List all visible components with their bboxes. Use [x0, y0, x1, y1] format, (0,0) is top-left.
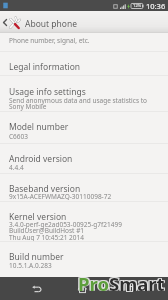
staticText: 12%	[133, 3, 142, 9]
staticText: Kernel version	[9, 211, 67, 223]
staticText: About phone	[25, 18, 78, 30]
button[interactable]: Navigate up	[0, 11, 21, 33]
staticText: ProSmart	[79, 271, 166, 296]
staticText: ProSmart	[77, 270, 164, 295]
staticText: ProSmart	[79, 270, 166, 295]
button[interactable]: Baseband version	[0, 173, 168, 201]
staticText: Legal information	[9, 61, 81, 73]
button[interactable]: Home	[59, 277, 105, 300]
button[interactable]: Legal information	[0, 51, 168, 76]
staticText: 4.4.4	[9, 163, 24, 172]
staticText: 10:36	[146, 1, 166, 11]
staticText: Send anonymous data and usage statistics…	[9, 96, 147, 105]
button[interactable]: Back	[13, 277, 59, 300]
staticText: Sony Mobile	[9, 102, 47, 111]
button[interactable]: Model number	[0, 111, 168, 143]
button[interactable]: Kernel version	[0, 201, 168, 242]
button[interactable]: Build number	[0, 241, 168, 277]
staticText: Pro	[78, 271, 109, 296]
button[interactable]: Usage info settings	[0, 75, 168, 111]
staticText: Usage info settings	[9, 86, 86, 98]
staticText: 9x15A-ACEFWMAZQ-30110098-72	[9, 192, 112, 201]
staticText: Model number	[9, 121, 69, 133]
staticText: Thu Aug 7 10:45:21 2014	[9, 233, 84, 242]
staticText: Build number	[9, 251, 64, 263]
button[interactable]: Android version	[0, 143, 168, 173]
staticText: C6603	[9, 132, 28, 141]
staticText: BuildUser@BuildHost #1	[9, 226, 85, 235]
staticText: Phone number, signal, etc.	[9, 36, 90, 45]
staticText: Baseband version	[9, 183, 81, 195]
staticText: 10.5.1.A.0.283	[9, 261, 52, 270]
staticText: 3.4.0-perf-ge2ad053-00925-g7f21499	[9, 220, 122, 229]
button[interactable]: Recent apps	[106, 277, 152, 300]
staticText: Android version	[9, 153, 73, 165]
staticText: ProSmart	[77, 271, 164, 296]
staticText: Smart	[109, 271, 165, 296]
